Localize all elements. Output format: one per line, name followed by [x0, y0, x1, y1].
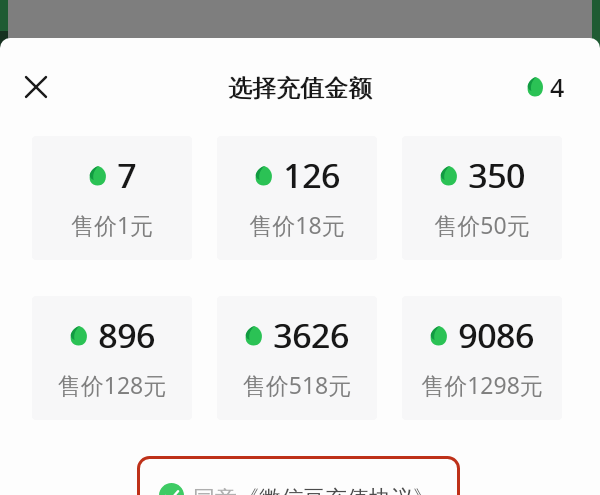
button[interactable]: 9086	[402, 296, 562, 420]
staticText: 7	[118, 153, 137, 198]
staticText: 《微信豆充值协议》	[237, 485, 435, 495]
staticText: 同意	[193, 485, 237, 495]
button[interactable]: Close	[22, 73, 50, 101]
staticText: 126	[283, 153, 340, 198]
staticText: 3626	[273, 313, 349, 358]
staticText: 126	[284, 153, 341, 198]
staticText: 9086	[459, 313, 535, 358]
button[interactable]: 7	[32, 136, 192, 260]
staticText: 售价1298元	[402, 369, 562, 400]
button[interactable]: 350	[402, 136, 562, 260]
button[interactable]: 同意	[159, 481, 435, 495]
staticText: 选择充值金额	[1, 73, 600, 103]
staticText: 9086	[458, 313, 534, 358]
staticText: 售价128元	[32, 369, 192, 400]
staticText: 4	[550, 70, 565, 104]
button[interactable]: 4	[527, 70, 565, 104]
staticText: 350	[468, 153, 525, 198]
button[interactable]: 126	[217, 136, 377, 260]
staticText: 896	[99, 313, 156, 358]
button[interactable]: 3626	[217, 296, 377, 420]
staticText: 350	[469, 153, 526, 198]
staticText: 售价50元	[402, 209, 562, 240]
staticText: 售价18元	[217, 209, 377, 240]
staticText: 3626	[274, 313, 350, 358]
button[interactable]: 896	[32, 296, 192, 420]
staticText: 售价1元	[32, 209, 192, 240]
staticText: 选择充值金额	[0, 73, 600, 103]
staticText: 7	[117, 153, 136, 198]
staticText: 售价518元	[217, 369, 377, 400]
staticText: 896	[98, 313, 155, 358]
